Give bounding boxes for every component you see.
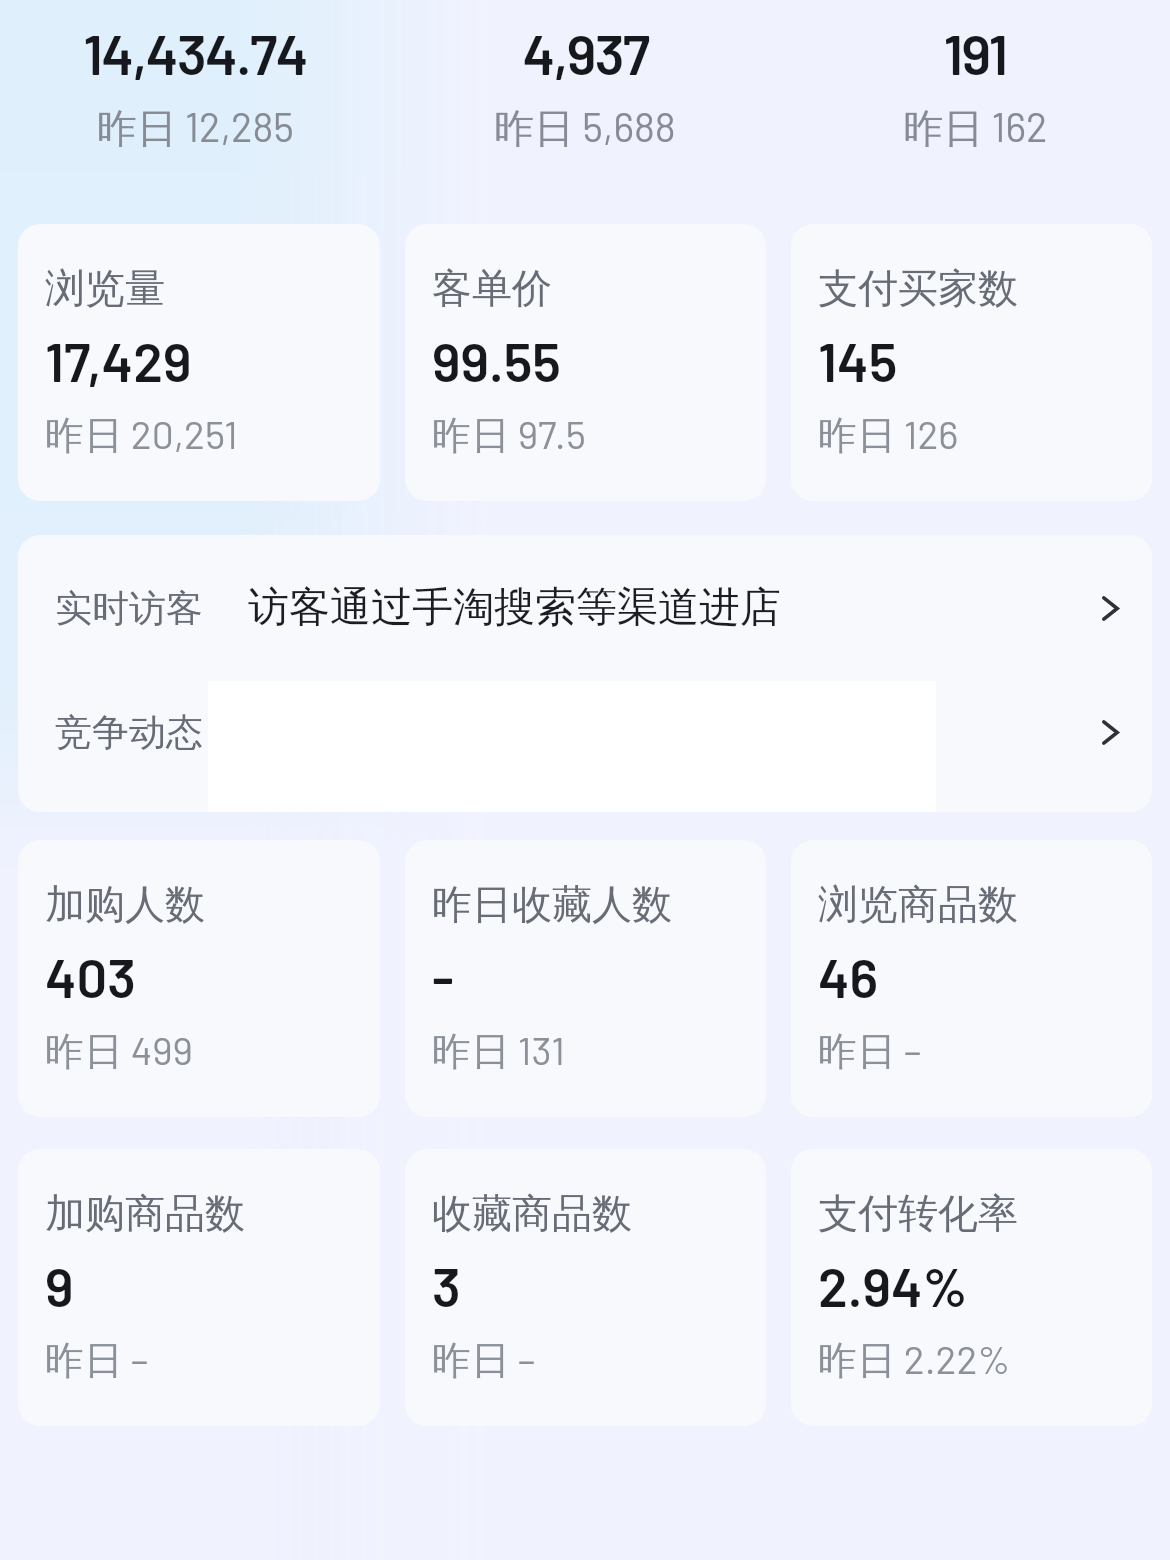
staticText: 14,434.74 [83,19,307,86]
staticText: 昨日 12,285 [97,102,294,154]
other: 竞争动态详情 [1102,720,1119,745]
staticText: 昨日 – [432,1335,536,1386]
staticText: 昨日 – [45,1335,149,1386]
button[interactable]: 浏览量 [18,224,380,501]
staticText: 客单价 [432,263,552,313]
staticText: 昨日收藏人数 [432,879,672,929]
staticText: 46 [818,944,879,1009]
staticText: 访客通过手淘搜索等渠道进店 [248,582,781,634]
staticText: 浏览商品数 [818,879,1018,929]
button[interactable]: 加购人数 [18,840,380,1117]
button[interactable]: 竞争动态 [18,681,1152,784]
button[interactable]: 支付买家数 [791,224,1152,501]
staticText: 昨日 20,251 [45,410,238,461]
staticText: 9 [45,1253,74,1318]
button[interactable]: 实时访客 [18,535,1152,681]
staticText: 191 [943,19,1007,86]
staticText: 3 [432,1253,461,1318]
staticText: 403 [45,944,136,1009]
staticText: 昨日 162 [903,102,1048,154]
staticText: 昨日 5,688 [494,102,676,154]
staticText: 99.55 [432,328,561,393]
staticText: 昨日 97.5 [432,410,586,461]
button[interactable]: 昨日收藏人数 [405,840,766,1117]
staticText: 浏览量 [45,263,165,313]
staticText: 收藏商品数 [432,1188,632,1238]
staticText: 昨日 126 [818,410,959,461]
staticText: 145 [818,328,898,393]
button[interactable]: 支付转化率 [791,1149,1152,1426]
staticText: 加购商品数 [45,1188,245,1238]
button[interactable]: 浏览商品数 [791,840,1152,1117]
staticText: 昨日 499 [45,1026,193,1077]
staticText: - [432,944,454,1009]
button[interactable]: 收藏商品数 [405,1149,766,1426]
other: 实时访客详情 [1102,596,1119,621]
staticText: 实时访客 [55,585,203,632]
staticText: 支付买家数 [818,263,1018,313]
staticText: 昨日 2.22% [818,1335,1011,1386]
staticText: 昨日 – [818,1026,922,1077]
staticText: 支付转化率 [818,1188,1018,1238]
staticText: 竞争动态 [55,709,203,756]
button[interactable]: 客单价 [405,224,766,501]
staticText: 4,937 [522,19,649,86]
staticText: 17,429 [45,328,192,393]
staticText: 2.94% [818,1253,968,1318]
button[interactable]: 加购商品数 [18,1149,380,1426]
staticText: 加购人数 [45,879,205,929]
staticText: 昨日 131 [432,1026,565,1077]
